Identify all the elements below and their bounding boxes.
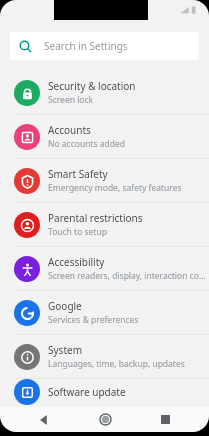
button[interactable]: Software update bbox=[0, 379, 209, 405]
staticText: Security & location bbox=[48, 79, 136, 93]
staticText: Screen readers, display, interaction co… bbox=[48, 270, 206, 282]
button[interactable]: Accounts bbox=[0, 115, 209, 159]
button[interactable]: Back bbox=[27, 407, 61, 432]
button[interactable]: Parental restrictions bbox=[0, 203, 209, 247]
staticText: Accounts bbox=[48, 123, 91, 137]
staticText: Screen lock bbox=[48, 94, 94, 106]
button[interactable]: Accessibility bbox=[0, 247, 209, 291]
staticText: System bbox=[48, 343, 82, 357]
button[interactable]: Smart Safety bbox=[0, 159, 209, 203]
button[interactable]: Security & location bbox=[0, 71, 209, 115]
button[interactable]: System bbox=[0, 335, 209, 379]
staticText: Parental restrictions bbox=[48, 211, 143, 225]
staticText: Emergency mode, safety features bbox=[48, 182, 182, 194]
button[interactable]: Google bbox=[0, 291, 209, 335]
staticText: Touch to setup bbox=[48, 226, 107, 238]
staticText: Software update bbox=[48, 385, 126, 399]
button[interactable]: Home bbox=[88, 407, 122, 432]
staticText: Services & preferences bbox=[48, 314, 139, 326]
staticText: Smart Safety bbox=[48, 167, 108, 181]
staticText: Accessibility bbox=[48, 255, 105, 269]
button[interactable]: Search in Settings bbox=[10, 32, 199, 60]
staticText: No accounts added bbox=[48, 138, 125, 150]
staticText: Languages, time, backup, updates bbox=[48, 358, 185, 370]
staticText: Search in Settings bbox=[44, 39, 128, 53]
staticText: Google bbox=[48, 299, 82, 313]
button[interactable]: Recent apps bbox=[148, 407, 182, 432]
